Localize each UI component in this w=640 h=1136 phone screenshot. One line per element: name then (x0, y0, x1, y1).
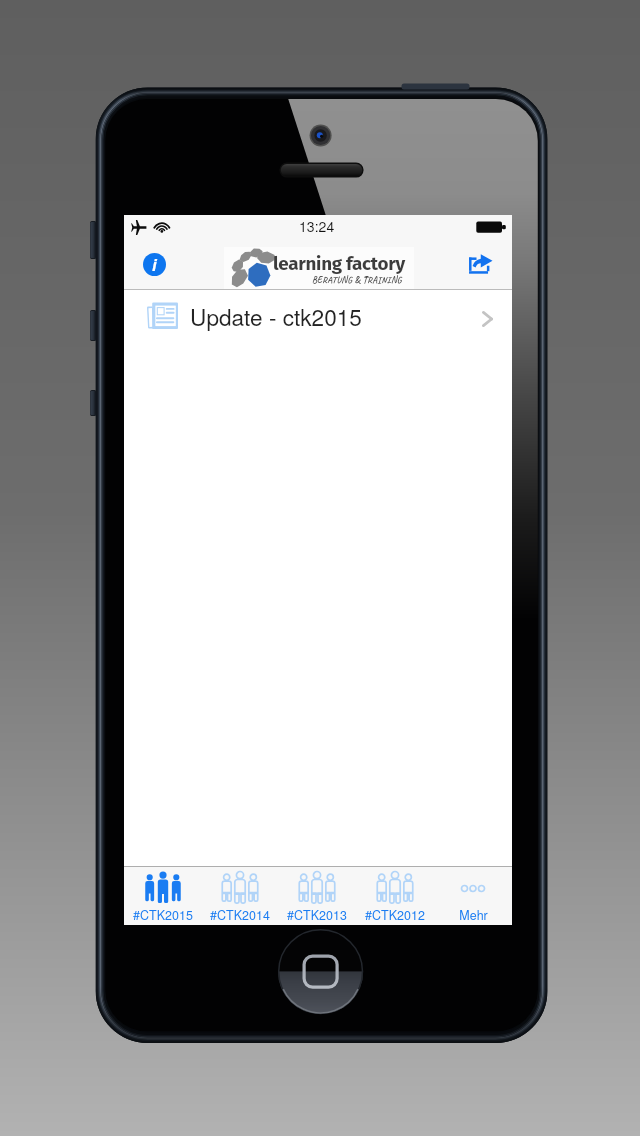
staticText: #CTK2013 (287, 906, 347, 924)
button[interactable]: #CTK2015 (124, 867, 201, 925)
button[interactable]: Update - ctk2015 (124, 290, 512, 347)
button[interactable]: Mehr (434, 867, 512, 925)
staticText: #CTK2015 (133, 906, 193, 924)
staticText: Update - ctk2015 (190, 300, 362, 332)
staticText: BERATUNG & TRAINING (312, 274, 402, 286)
staticText: Mehr (459, 906, 488, 924)
button[interactable]: Share (462, 245, 500, 283)
staticText: #CTK2012 (365, 906, 425, 924)
button[interactable]: #CTK2013 (278, 867, 356, 925)
staticText: #CTK2014 (210, 906, 270, 924)
button[interactable]: Info (136, 246, 172, 282)
button[interactable]: #CTK2014 (201, 867, 278, 925)
button[interactable]: #CTK2012 (356, 867, 434, 925)
staticText: 13:24 (299, 216, 335, 236)
staticText: i (152, 253, 157, 276)
staticText: learning factory (273, 252, 406, 275)
